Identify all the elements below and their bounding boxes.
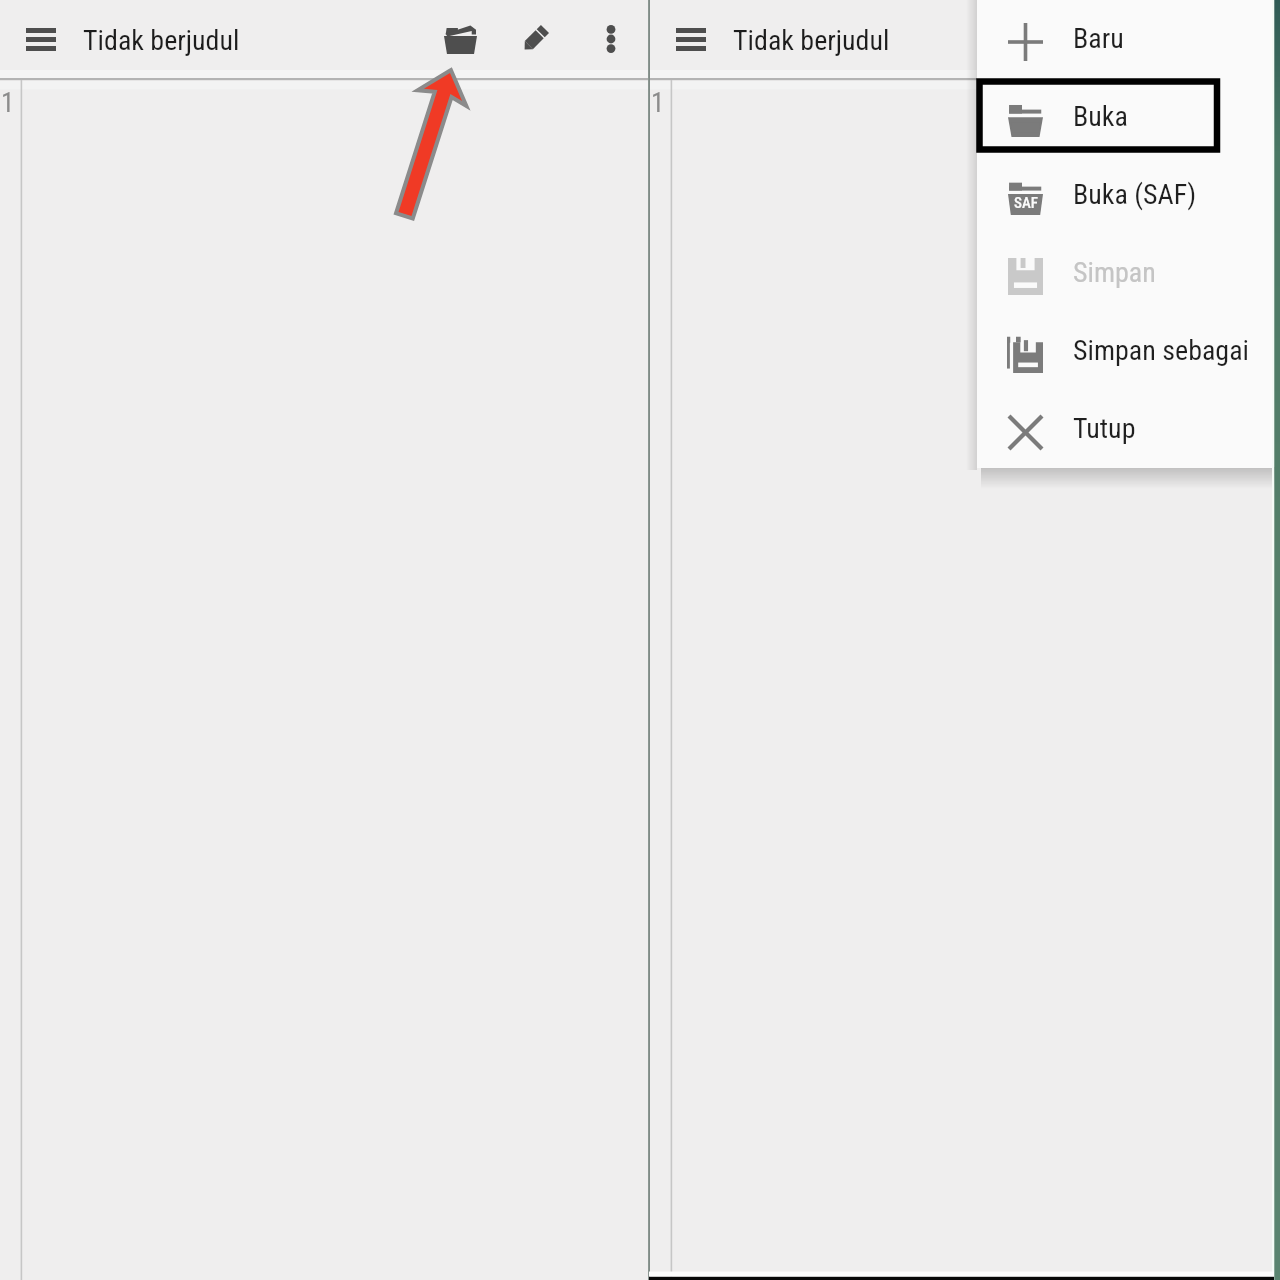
button[interactable]: Buka <box>977 78 1274 156</box>
staticText: Baru <box>1073 22 1124 55</box>
button[interactable]: Navigation menu <box>665 13 717 65</box>
staticText: SAF <box>1014 194 1038 212</box>
staticText: Tidak berjudul <box>733 24 890 57</box>
staticText: Simpan sebagai <box>1073 334 1249 367</box>
button[interactable]: More options <box>585 13 637 65</box>
button[interactable]: Simpan <box>977 234 1274 312</box>
staticText: 1 <box>651 87 665 119</box>
staticText: Simpan <box>1073 256 1156 289</box>
button[interactable]: Open file <box>434 13 486 65</box>
staticText: Buka <box>1073 100 1128 133</box>
staticText: Buka (SAF) <box>1073 178 1197 211</box>
staticText: 1 <box>1 87 15 119</box>
button[interactable]: Simpan sebagai <box>977 312 1274 390</box>
staticText: Tutup <box>1073 412 1136 445</box>
button[interactable]: Baru <box>977 0 1274 78</box>
button[interactable]: Edit <box>509 13 561 65</box>
button[interactable]: SAF <box>977 156 1274 234</box>
button[interactable]: Tutup <box>977 390 1274 468</box>
staticText: Tidak berjudul <box>83 24 240 57</box>
button[interactable]: Navigation menu <box>15 13 67 65</box>
